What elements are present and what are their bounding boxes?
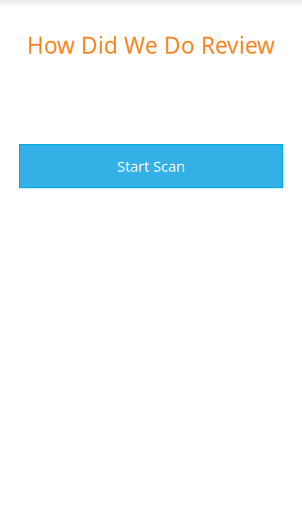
button[interactable]: Start Scan — [19, 144, 283, 188]
staticText: Start Scan — [117, 156, 185, 176]
staticText: How Did We Do Review — [27, 30, 275, 60]
